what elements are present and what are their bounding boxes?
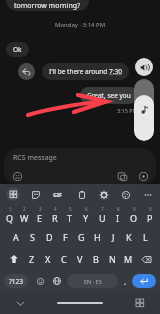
button[interactable]: K — [121, 226, 137, 248]
button[interactable]: Emoji — [11, 170, 23, 182]
button[interactable]: Gallery — [116, 170, 128, 182]
staticText: T — [67, 212, 73, 224]
staticText: D — [46, 231, 53, 243]
button[interactable]: A — [7, 226, 24, 248]
staticText: F — [63, 231, 68, 243]
button[interactable]: Volume output — [135, 58, 153, 76]
button[interactable]: 7 — [94, 204, 110, 226]
button[interactable]: Switch keyboard — [120, 292, 160, 314]
staticText: 0 — [149, 206, 152, 212]
staticText: 4 — [54, 206, 57, 212]
button[interactable]: F — [57, 226, 73, 248]
staticText: RCS message — [13, 153, 57, 163]
button[interactable]: Reply — [18, 63, 35, 80]
staticText: G — [78, 231, 85, 243]
button[interactable]: Settings — [97, 188, 110, 201]
staticText: 7 — [101, 206, 104, 212]
button[interactable]: Language — [51, 275, 63, 287]
button[interactable]: Shift — [3, 248, 24, 270]
staticText: U — [99, 212, 106, 224]
button[interactable]: Clipboard — [75, 188, 88, 201]
staticText: tomorrow morning? — [14, 1, 81, 11]
button[interactable]: Volume slider — [134, 79, 154, 141]
button[interactable]: B — [88, 248, 104, 270]
staticText: Ok — [13, 45, 22, 54]
staticText: I'll be there around — [49, 67, 109, 76]
button[interactable]: GIF — [51, 189, 65, 200]
staticText: W — [20, 212, 29, 224]
staticText: GIF — [53, 191, 63, 198]
staticText: L — [143, 231, 148, 243]
staticText: 2 — [23, 206, 26, 212]
button[interactable]: 3 — [32, 204, 47, 226]
staticText: 3 — [39, 206, 42, 212]
button[interactable]: More — [141, 188, 154, 201]
button[interactable]: Z — [24, 248, 40, 270]
staticText: EN · ES — [84, 278, 102, 285]
button[interactable]: Keyboard — [6, 187, 20, 201]
button[interactable]: C — [56, 248, 72, 270]
staticText: M — [124, 253, 133, 265]
button[interactable]: D — [41, 226, 57, 248]
staticText: 8 — [117, 206, 120, 212]
button[interactable]: I'll be there around — [42, 63, 129, 80]
button[interactable]: Send — [137, 170, 149, 182]
staticText: 1 — [9, 206, 12, 212]
staticText: O — [130, 212, 138, 224]
button[interactable]: Backspace — [136, 248, 157, 270]
button[interactable]: H — [89, 226, 105, 248]
staticText: ?123 — [9, 277, 23, 286]
button[interactable]: tomorrow morning? — [6, 0, 89, 11]
staticText: N — [109, 253, 116, 265]
staticText: E — [37, 212, 43, 224]
button[interactable]: . — [122, 274, 129, 288]
staticText: J — [112, 231, 115, 243]
button[interactable]: Enter — [132, 274, 156, 288]
staticText: V — [77, 253, 83, 265]
staticText: Monday · 3:14 PM — [55, 21, 106, 29]
staticText: Z — [29, 253, 35, 265]
staticText: I — [116, 212, 120, 224]
button[interactable]: Great, see you — [80, 87, 138, 104]
button[interactable]: RCS message — [4, 148, 156, 167]
button[interactable]: 2 — [17, 204, 32, 226]
button[interactable]: Hide keyboard — [0, 292, 40, 314]
button[interactable]: J — [105, 226, 121, 248]
button[interactable]: EN · ES — [67, 274, 118, 288]
button[interactable]: V — [72, 248, 88, 270]
button[interactable]: 4 — [47, 204, 62, 226]
button[interactable]: 1 — [2, 204, 17, 226]
staticText: Great, see you — [87, 91, 131, 100]
staticText: 5 — [69, 206, 72, 212]
button[interactable]: 0 — [142, 204, 158, 226]
button[interactable]: Ok — [6, 42, 29, 57]
button[interactable]: L — [137, 226, 153, 248]
staticText: . — [124, 276, 127, 287]
staticText: 3:15 PM — [117, 107, 138, 114]
button[interactable]: ?123 — [4, 274, 28, 288]
staticText: K — [126, 231, 132, 243]
staticText: P — [147, 212, 153, 224]
button[interactable]: 9 — [126, 204, 142, 226]
button[interactable]: Stickers — [29, 188, 42, 201]
button[interactable]: X — [40, 248, 56, 270]
button[interactable]: G — [73, 226, 89, 248]
staticText: C — [61, 253, 67, 265]
staticText: A — [13, 231, 19, 243]
button[interactable]: Emoji — [34, 275, 46, 287]
staticText: 6 — [85, 206, 88, 212]
staticText: B — [93, 253, 99, 265]
button[interactable]: 8 — [110, 204, 126, 226]
button[interactable]: 6 — [78, 204, 94, 226]
staticText: S — [30, 231, 35, 243]
staticText: R — [52, 212, 58, 224]
staticText: X — [45, 253, 51, 265]
button[interactable]: Theme — [119, 188, 132, 201]
button[interactable]: M — [120, 248, 136, 270]
staticText: Y — [83, 212, 89, 224]
button[interactable]: 5 — [62, 204, 78, 226]
button[interactable]: N — [104, 248, 120, 270]
staticText: 9 — [133, 206, 136, 212]
staticText: 7:30 — [109, 67, 122, 76]
button[interactable]: S — [24, 226, 41, 248]
